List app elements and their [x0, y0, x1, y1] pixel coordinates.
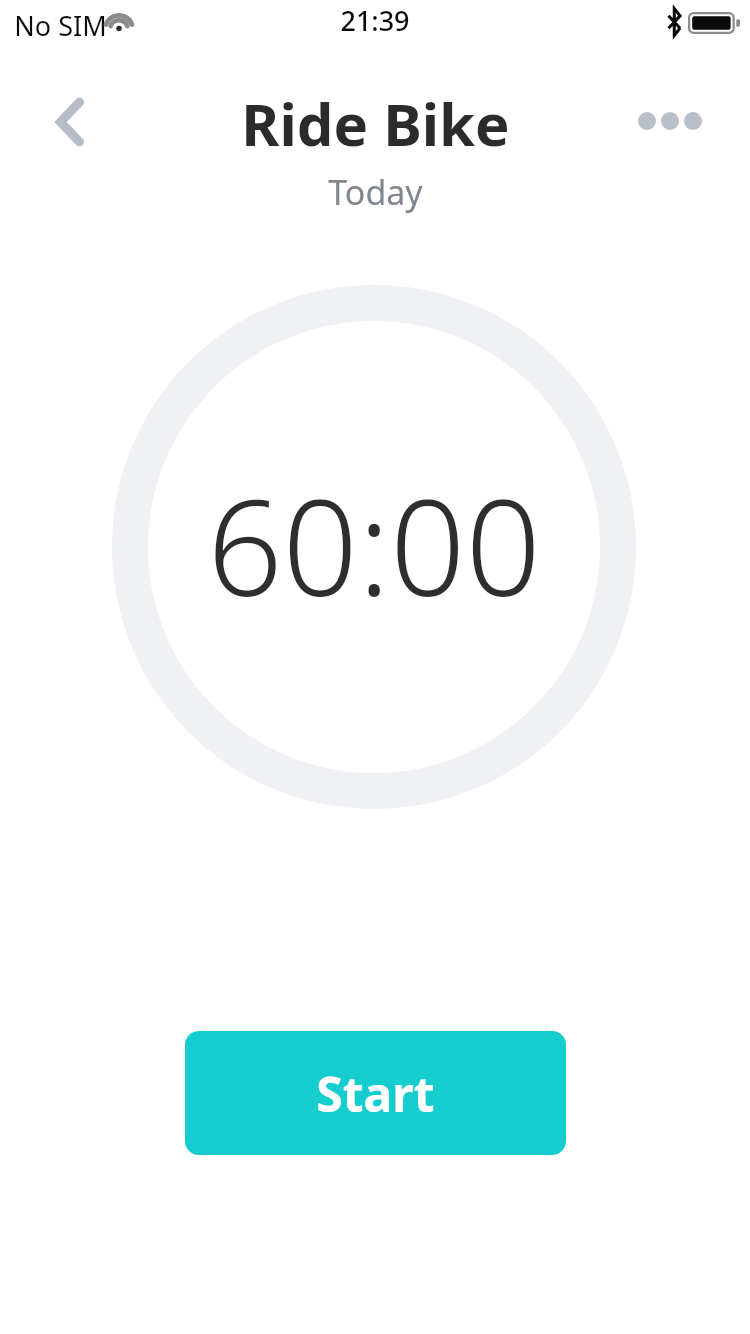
button[interactable]: More options	[628, 88, 712, 154]
button[interactable]: Start	[185, 1031, 566, 1155]
staticText: 60:00	[207, 455, 541, 635]
staticText: No SIM	[14, 7, 107, 44]
other: Battery	[688, 12, 740, 34]
staticText: Today	[328, 169, 423, 215]
staticText: 21:39	[340, 2, 410, 39]
other: Bluetooth	[666, 8, 684, 36]
button[interactable]: Back	[34, 86, 106, 158]
staticText: Start	[316, 1061, 435, 1126]
staticText: Ride Bike	[241, 84, 510, 163]
